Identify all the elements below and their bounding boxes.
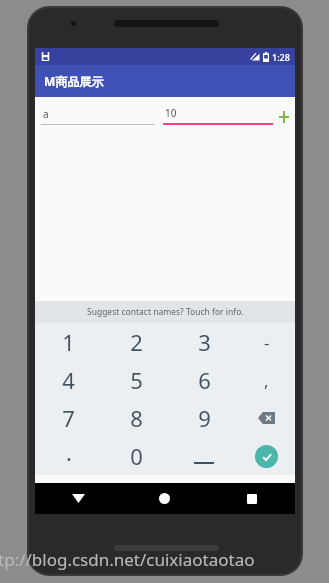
button[interactable]: 1 [35,323,102,361]
staticText: M商品展示 [44,73,104,89]
staticText: Suggest contact names? Touch for info. [87,306,244,318]
button[interactable]: 0 [102,437,170,475]
staticText: 7 [62,403,75,433]
staticText: . [66,437,72,467]
staticText: 1:28 [272,51,290,63]
staticText: 8 [130,403,143,433]
staticText: - [264,331,270,354]
staticText: 10 [165,106,177,120]
button[interactable]: . [35,437,102,475]
staticText: 1 [62,327,75,357]
button[interactable]: Suggest contact names? Touch for info. [35,301,295,323]
button[interactable]: 2 [102,323,170,361]
button[interactable]: 10 [163,106,273,125]
button[interactable]: , [238,361,295,399]
button[interactable]: Add [279,109,289,125]
button[interactable]: Done [238,437,295,475]
staticText: , [264,369,269,392]
staticText: 9 [198,403,211,433]
other: Backspace [258,412,275,424]
button[interactable]: 3 [170,323,238,361]
button[interactable]: - [238,323,295,361]
button[interactable]: 9 [170,399,238,437]
staticText: 3 [198,327,211,357]
staticText: 5 [130,365,143,395]
button[interactable]: Home [121,483,208,514]
staticText: 4 [62,365,75,395]
staticText: 6 [198,365,211,395]
button[interactable]: M商品展示 [35,65,295,97]
button[interactable]: a [41,107,155,125]
staticText: 0 [130,441,143,471]
button[interactable]: Backspace [238,399,295,437]
button[interactable]: 5 [102,361,170,399]
button[interactable]: Recent apps [208,483,295,514]
button[interactable] [170,437,238,475]
staticText: a [43,107,49,121]
staticText: 2 [130,327,143,357]
button[interactable]: 7 [35,399,102,437]
staticText: tp://blog.csdn.net/cuixiaotaotao [0,548,327,571]
button[interactable]: 8 [102,399,170,437]
other: Done [255,445,278,468]
button[interactable]: Back [35,483,121,514]
button[interactable]: 4 [35,361,102,399]
button[interactable]: 6 [170,361,238,399]
